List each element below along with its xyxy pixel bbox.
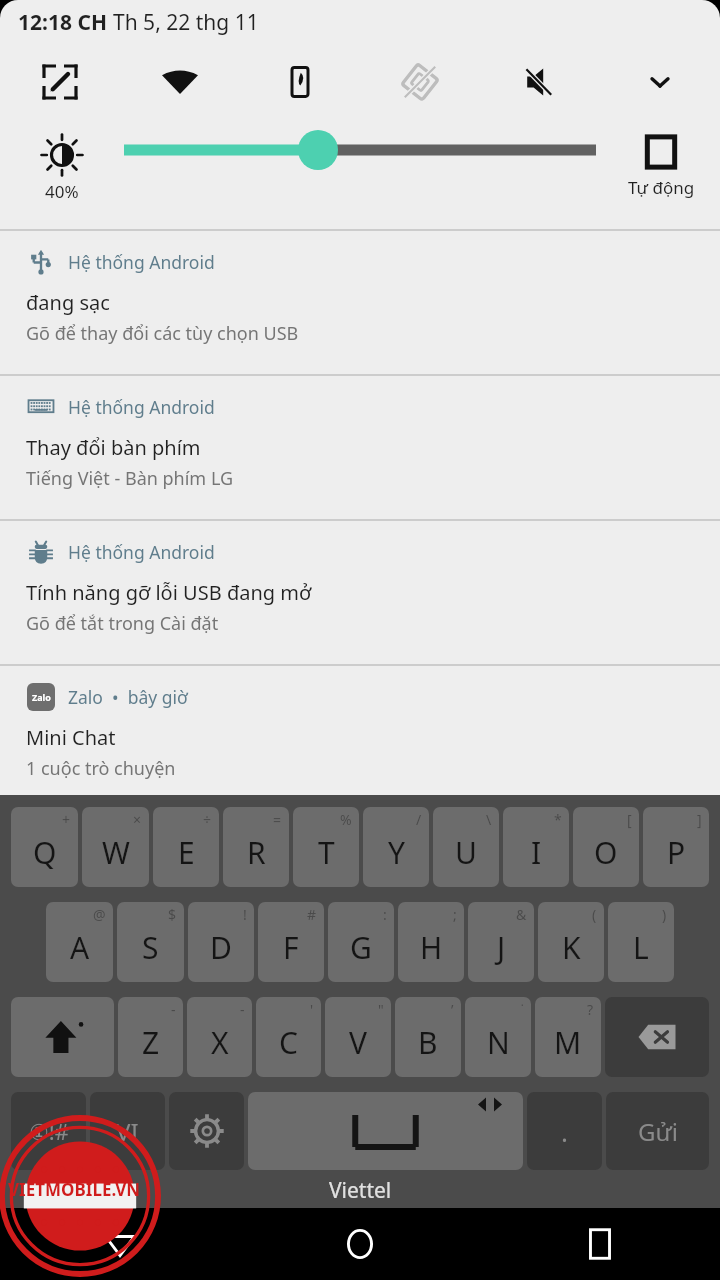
button[interactable]: Space — [248, 1092, 523, 1170]
button[interactable]: Wi-Fi — [120, 44, 240, 120]
staticText: Q — [33, 832, 57, 873]
staticText: L — [633, 927, 649, 968]
staticText: Gửi — [638, 1115, 678, 1148]
staticText: ①!# — [29, 1116, 69, 1146]
staticText: Zalo — [32, 691, 51, 703]
button[interactable]: Recents — [480, 1208, 720, 1280]
button[interactable]: * — [503, 807, 569, 887]
staticText: Tự động — [628, 176, 695, 199]
button[interactable]: Settings — [169, 1092, 244, 1170]
button[interactable]: \ — [433, 807, 499, 887]
button[interactable]: # — [258, 902, 324, 982]
button[interactable]: Backspace — [605, 997, 709, 1077]
button[interactable]: + — [11, 807, 78, 887]
button[interactable]: ' — [256, 997, 321, 1077]
staticText: E — [178, 832, 195, 873]
staticText: S — [142, 927, 159, 968]
button[interactable]: ( — [538, 902, 604, 982]
button[interactable]: Language — [90, 1092, 165, 1170]
button[interactable]: Sound off — [480, 44, 600, 120]
button[interactable]: ; — [398, 902, 464, 982]
button[interactable]: Gửi — [606, 1092, 709, 1170]
staticText: J — [497, 927, 506, 968]
staticText: Hệ thống Android — [68, 395, 215, 419]
staticText: % — [340, 810, 352, 829]
button[interactable]: - — [118, 997, 183, 1077]
staticText: ] — [697, 810, 702, 829]
button[interactable]: ! — [188, 902, 254, 982]
button[interactable]: & — [468, 902, 534, 982]
button[interactable]: ˙ — [465, 997, 531, 1077]
staticText: ? — [587, 1000, 594, 1019]
staticText: × — [133, 810, 142, 829]
staticText: U — [455, 832, 477, 873]
button[interactable]: Back — [0, 1208, 240, 1280]
staticText: \ — [486, 810, 492, 829]
staticText: Tính năng gỡ lỗi USB đang mở — [26, 579, 312, 606]
staticText: ) — [662, 905, 667, 924]
staticText: C — [279, 1022, 298, 1063]
staticText: X — [211, 1022, 229, 1063]
button[interactable]: Period — [527, 1092, 602, 1170]
staticText: G — [350, 927, 372, 968]
button[interactable]: Screen capture — [0, 44, 120, 120]
staticText: D — [210, 927, 232, 968]
button[interactable]: Shift — [11, 997, 114, 1077]
staticText: Viettel — [329, 1176, 392, 1205]
button[interactable]: : — [328, 902, 394, 982]
button[interactable]: = — [223, 807, 289, 887]
button[interactable]: / — [363, 807, 429, 887]
button[interactable]: Zalo — [0, 666, 720, 795]
button[interactable]: Hệ thống Android — [0, 521, 720, 664]
staticText: Mini Chat — [26, 724, 116, 751]
button[interactable]: Auto rotate — [240, 44, 360, 120]
staticText: Thay đổi bàn phím — [26, 434, 201, 461]
staticText: Y — [388, 832, 405, 873]
staticText: $ — [168, 905, 177, 924]
button[interactable]: Hệ thống Android — [0, 376, 720, 519]
staticText: O — [594, 832, 618, 873]
staticText: 1 cuộc trò chuyện — [26, 756, 176, 781]
button[interactable]: Brightness slider — [124, 120, 602, 180]
button[interactable]: ’ — [395, 997, 461, 1077]
staticText: ! — [243, 905, 247, 924]
button[interactable]: [ — [573, 807, 639, 887]
button[interactable]: % — [293, 807, 359, 887]
staticText: I — [531, 832, 542, 873]
staticText: Z — [142, 1022, 160, 1063]
staticText: Th 5, 22 thg 11 — [113, 8, 259, 37]
button[interactable]: Home — [240, 1208, 480, 1280]
staticText: = — [273, 810, 282, 829]
staticText: N — [487, 1022, 510, 1063]
staticText: H — [420, 927, 443, 968]
staticText: VIETMOBILE.VN — [8, 1178, 141, 1201]
staticText: Hệ thống Android — [68, 250, 215, 274]
staticText: [ — [627, 810, 632, 829]
staticText: - — [240, 1000, 245, 1019]
button[interactable]: Symbols — [11, 1092, 86, 1170]
staticText: 12:18 CH — [18, 8, 113, 37]
button[interactable]: ? — [535, 997, 601, 1077]
staticText: F — [283, 927, 299, 968]
button[interactable]: @ — [46, 902, 113, 982]
staticText: V — [349, 1022, 367, 1063]
button[interactable]: $ — [117, 902, 184, 982]
staticText: A — [70, 927, 90, 968]
button[interactable]: ) — [608, 902, 674, 982]
button[interactable]: Expand — [600, 44, 720, 120]
button[interactable]: ÷ — [153, 807, 219, 887]
button[interactable]: - — [187, 997, 252, 1077]
button[interactable]: Hệ thống Android — [0, 231, 720, 374]
button[interactable]: × — [82, 807, 149, 887]
button[interactable]: ] — [643, 807, 709, 887]
staticText: ÷ — [203, 810, 212, 829]
button[interactable]: NFC off — [360, 44, 480, 120]
button[interactable]: " — [325, 997, 391, 1077]
staticText: K — [562, 927, 581, 968]
staticText: đang sạc — [26, 289, 110, 316]
button[interactable]: 40% — [0, 120, 124, 215]
staticText: VI — [116, 1115, 139, 1148]
button[interactable]: Tự động — [602, 120, 720, 215]
staticText: ' — [310, 1000, 314, 1019]
staticText: M — [554, 1022, 582, 1063]
